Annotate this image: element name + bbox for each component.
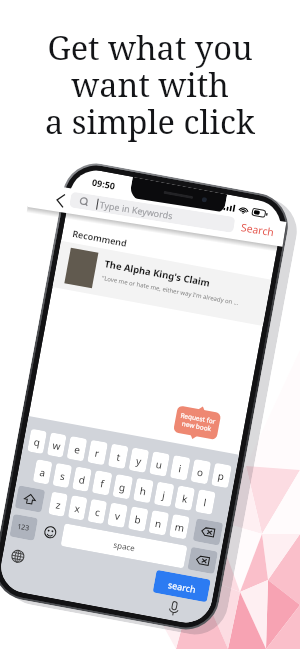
- button[interactable]: l: [195, 489, 216, 515]
- staticText: j: [161, 488, 167, 502]
- staticText: r: [94, 446, 101, 460]
- staticText: m: [174, 519, 186, 535]
- staticText: space: [113, 539, 136, 553]
- button[interactable]: a: [33, 459, 53, 485]
- staticText: search: [167, 578, 197, 595]
- button[interactable]: h: [133, 478, 154, 503]
- staticText: 123: [16, 522, 31, 534]
- button[interactable]: j: [154, 481, 174, 507]
- staticText: n: [154, 516, 163, 531]
- button[interactable]: b: [128, 506, 149, 532]
- button[interactable]: o: [190, 459, 211, 484]
- staticText: x: [73, 501, 82, 516]
- button[interactable]: Backspace: [193, 518, 223, 546]
- staticText: e: [73, 442, 81, 457]
- button[interactable]: f: [92, 470, 113, 496]
- staticText: Type in Keywords: [99, 198, 174, 221]
- staticText: "Love me or hate me, either way I'm alre…: [101, 274, 240, 307]
- button[interactable]: p: [211, 463, 232, 488]
- staticText: q: [33, 434, 42, 449]
- staticText: p: [217, 468, 226, 483]
- button[interactable]: r: [87, 440, 108, 465]
- button[interactable]: u: [149, 451, 170, 477]
- button[interactable]: v: [107, 502, 128, 528]
- staticText: b: [133, 512, 143, 527]
- staticText: a: [38, 465, 47, 480]
- staticText: The Alpha King's Claim: [103, 257, 212, 290]
- button[interactable]: d: [72, 466, 92, 492]
- staticText: k: [181, 491, 189, 506]
- staticText: y: [135, 453, 143, 468]
- button[interactable]: x: [68, 495, 88, 521]
- staticText: h: [139, 483, 148, 498]
- button[interactable]: m: [169, 514, 190, 539]
- button[interactable]: k: [174, 485, 195, 511]
- button[interactable]: space: [60, 523, 188, 569]
- button[interactable]: c: [87, 499, 107, 524]
- button[interactable]: Request for new book: [172, 402, 222, 443]
- staticText: g: [118, 480, 127, 495]
- button[interactable]: n: [148, 510, 169, 536]
- button[interactable]: i: [170, 455, 191, 481]
- button[interactable]: y: [128, 447, 149, 473]
- staticText: u: [155, 457, 164, 472]
- staticText: z: [55, 497, 62, 512]
- staticText: i: [177, 461, 183, 475]
- staticText: v: [114, 508, 122, 523]
- button[interactable]: z: [48, 491, 68, 517]
- button[interactable]: Dictate: [162, 597, 186, 620]
- button[interactable]: s: [52, 463, 72, 488]
- staticText: s: [59, 469, 66, 483]
- button[interactable]: t: [108, 443, 129, 469]
- button[interactable]: Emoji: [38, 519, 62, 545]
- staticText: t: [115, 450, 122, 464]
- staticText: w: [51, 438, 62, 453]
- staticText: Search: [240, 220, 276, 239]
- staticText: 09:50: [91, 176, 117, 192]
- button[interactable]: Search: [240, 220, 276, 239]
- staticText: d: [78, 472, 87, 487]
- button[interactable]: Language: [6, 545, 29, 568]
- staticText: f: [99, 476, 106, 491]
- button[interactable]: 123: [9, 514, 38, 541]
- button[interactable]: Shift: [15, 485, 45, 513]
- button[interactable]: Backspace: [187, 547, 218, 574]
- staticText: o: [196, 465, 205, 480]
- staticText: c: [94, 505, 101, 519]
- button[interactable]: w: [47, 432, 67, 458]
- button[interactable]: Back: [50, 189, 70, 210]
- button[interactable]: g: [112, 474, 133, 499]
- button[interactable]: Type in Keywords: [69, 191, 236, 233]
- button[interactable]: search: [153, 570, 211, 602]
- staticText: Get what you want with a simple click: [0, 25, 300, 144]
- button[interactable]: e: [66, 436, 87, 462]
- staticText: Recommend: [71, 227, 129, 249]
- staticText: Request for new book: [178, 410, 216, 434]
- staticText: l: [203, 495, 208, 510]
- button[interactable]: q: [27, 429, 47, 454]
